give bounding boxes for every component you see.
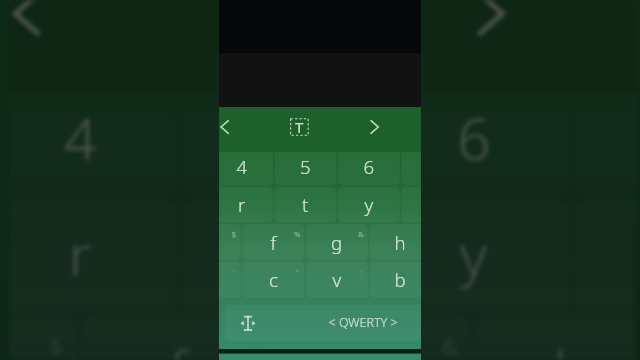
button[interactable]: Next: [352, 107, 397, 152]
button[interactable]: Previous: [219, 107, 267, 152]
button[interactable]: Select text: [277, 107, 322, 152]
button[interactable]: Move cursor: [225, 305, 273, 341]
button[interactable]: Switch to QWERTY layout: [326, 305, 402, 341]
